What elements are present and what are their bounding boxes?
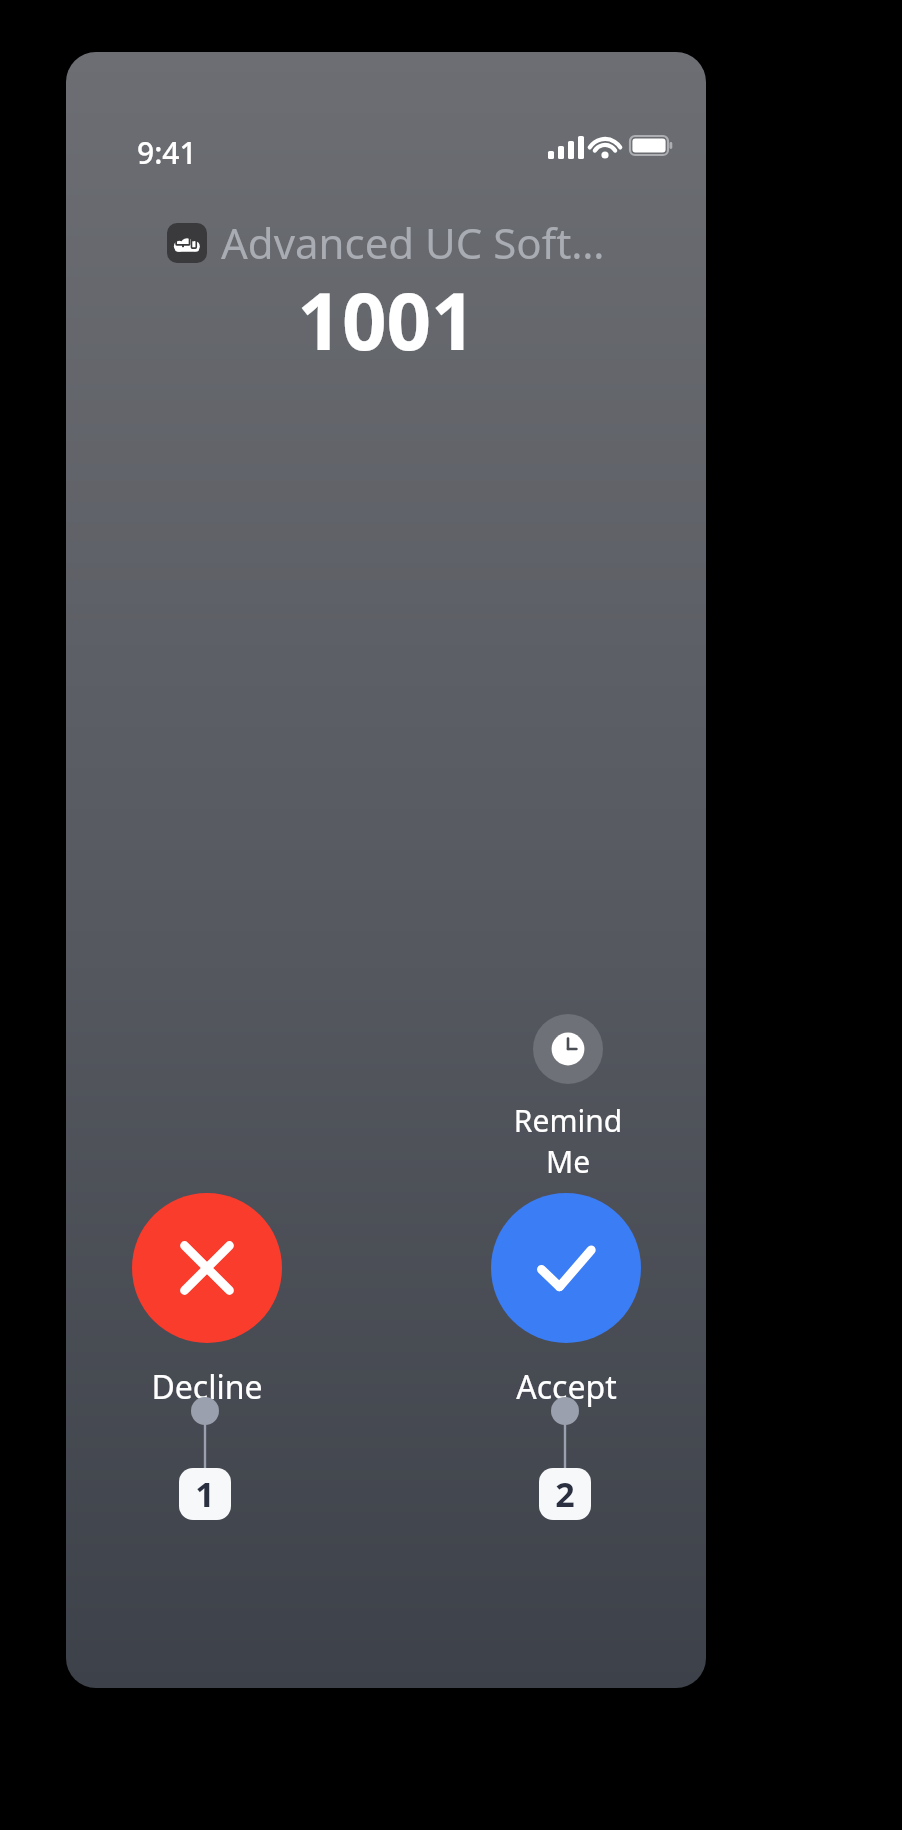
staticText: 2 (555, 1471, 575, 1517)
staticText: 1001 (297, 267, 476, 373)
staticText: Remind Me (500, 1100, 636, 1182)
button[interactable]: Remind Me (500, 1014, 636, 1182)
staticText: 9:41 (137, 132, 197, 173)
button[interactable]: 1 (179, 1468, 231, 1520)
button[interactable]: Decline (127, 1193, 287, 1409)
button[interactable]: Accept (486, 1193, 646, 1409)
other: Accept (491, 1193, 641, 1343)
button[interactable]: 2 (539, 1468, 591, 1520)
staticText: Accept (516, 1365, 617, 1409)
other: Remind Me (533, 1014, 603, 1084)
staticText: Advanced UC Soft… (221, 214, 605, 271)
other: Decline (132, 1193, 282, 1343)
staticText: Decline (151, 1365, 263, 1409)
staticText: 1 (195, 1471, 215, 1517)
